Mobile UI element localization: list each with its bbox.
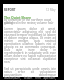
staticText: Sed ut perspiciatis unde omnis iste natu… xyxy=(4,67,56,80)
staticText: The Quiet Shore xyxy=(4,15,32,20)
staticText: published in the review, volume four xyxy=(4,21,54,25)
staticText: by a traveller of the northern coast, sp… xyxy=(4,18,56,25)
staticText: Lorem ipsum dolor sit amet, consectetur … xyxy=(4,27,56,64)
staticText: 12 May xyxy=(46,8,56,12)
staticText: REPORT xyxy=(4,8,16,12)
